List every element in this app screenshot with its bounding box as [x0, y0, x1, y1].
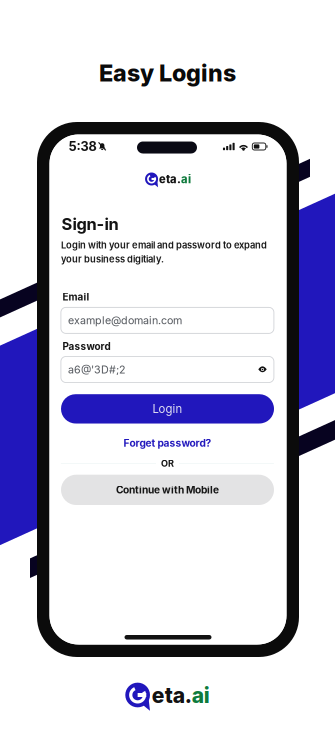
staticText: OR: [161, 458, 174, 469]
staticText: Forget password?: [123, 437, 211, 449]
staticText: example@domain.com: [68, 314, 182, 327]
staticText: Continue with Mobile: [116, 484, 219, 496]
staticText: eta.: [159, 172, 181, 186]
staticText: Password: [62, 340, 110, 352]
button[interactable]: Continue with Mobile: [61, 475, 274, 505]
staticText: eta.: [152, 683, 192, 708]
staticText: ai: [181, 172, 191, 186]
staticText: Easy Logins: [99, 59, 236, 87]
staticText: Sign-in: [61, 214, 118, 234]
staticText: 5:38: [68, 139, 96, 154]
staticText: ai: [192, 683, 210, 708]
staticText: Login with your email and password to ex…: [61, 239, 267, 251]
staticText: a6@'3D#;2: [68, 363, 126, 376]
staticText: your business digitialy.: [61, 253, 164, 265]
button[interactable]: Forget password?: [61, 436, 274, 449]
button[interactable]: Login: [61, 394, 274, 423]
staticText: Email: [62, 291, 89, 303]
staticText: Login: [152, 402, 182, 416]
